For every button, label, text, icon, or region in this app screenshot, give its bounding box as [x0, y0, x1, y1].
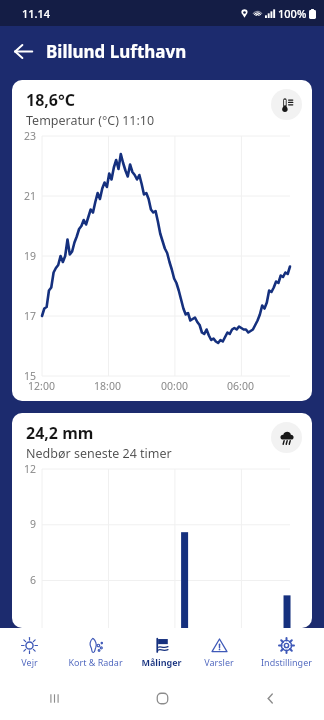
staticText: 18:00	[94, 379, 121, 393]
staticText: 9	[30, 517, 37, 531]
staticText: 18,6°C	[26, 89, 76, 111]
button[interactable]: Kort & Radar	[59, 628, 132, 676]
staticText: Nedbør seneste 24 timer	[26, 445, 172, 462]
staticText: Indstillinger	[261, 656, 312, 668]
button[interactable]: Temperature	[271, 89, 302, 120]
staticText: Kort & Radar	[68, 656, 123, 668]
staticText: Målinger	[141, 656, 182, 668]
staticText: Billund Lufthavn	[46, 40, 187, 63]
staticText: 6	[30, 573, 37, 587]
staticText: 15	[24, 369, 37, 383]
staticText: 100%	[278, 6, 307, 21]
button[interactable]: Indstillinger	[248, 628, 324, 676]
staticText: 12	[24, 462, 37, 476]
staticText: 24,2 mm	[26, 422, 94, 444]
staticText: 11.14	[22, 6, 51, 21]
staticText: 19	[24, 249, 37, 263]
button[interactable]: 18,6°C	[12, 80, 312, 401]
button[interactable]: Målinger	[132, 628, 190, 676]
staticText: 23	[24, 129, 37, 143]
staticText: Vejr	[21, 656, 38, 668]
button[interactable]: Home	[108, 676, 216, 720]
staticText: 12:00	[28, 379, 55, 393]
staticText: 21	[24, 189, 37, 203]
staticText: 17	[24, 309, 37, 323]
staticText: Varsler	[204, 656, 234, 668]
button[interactable]: Varsler	[190, 628, 248, 676]
button[interactable]: Back	[0, 28, 46, 74]
staticText: 00:00	[161, 379, 188, 393]
button[interactable]: Precipitation	[271, 422, 302, 453]
button[interactable]: Back	[216, 676, 324, 720]
staticText: 06:00	[227, 379, 254, 393]
button[interactable]: Recent apps	[0, 676, 108, 720]
button[interactable]: Vejr	[0, 628, 59, 676]
button[interactable]: 24,2 mm	[12, 413, 312, 628]
staticText: Temperatur (°C) 11:10	[26, 112, 155, 129]
